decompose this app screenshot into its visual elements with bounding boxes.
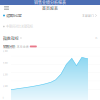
staticText: 本月业绩 — [17, 44, 29, 49]
staticText: 运营办公室 — [6, 13, 21, 18]
staticText: 首页报表 — [42, 5, 58, 11]
staticText: 8,000 — [2, 37, 7, 41]
staticText: 3,200 — [2, 72, 7, 76]
staticText: 15 — [95, 36, 97, 40]
staticText: 6,400 — [2, 49, 7, 53]
staticText: 1,600 — [2, 84, 7, 88]
staticText: 本期间对比关键指标 — [6, 24, 33, 29]
staticText: 0 — [2, 96, 3, 99]
button[interactable]: Menu — [2, 5, 11, 11]
staticText: 全部部门 — [82, 13, 94, 18]
staticText: 销售业绩分析报表 — [34, 0, 66, 5]
button[interactable]: 运营办公室 — [0, 11, 100, 20]
staticText: 4,800 — [2, 61, 7, 64]
staticText: 销售分析 — [3, 44, 15, 49]
staticText: 指数指标 — [3, 35, 19, 41]
